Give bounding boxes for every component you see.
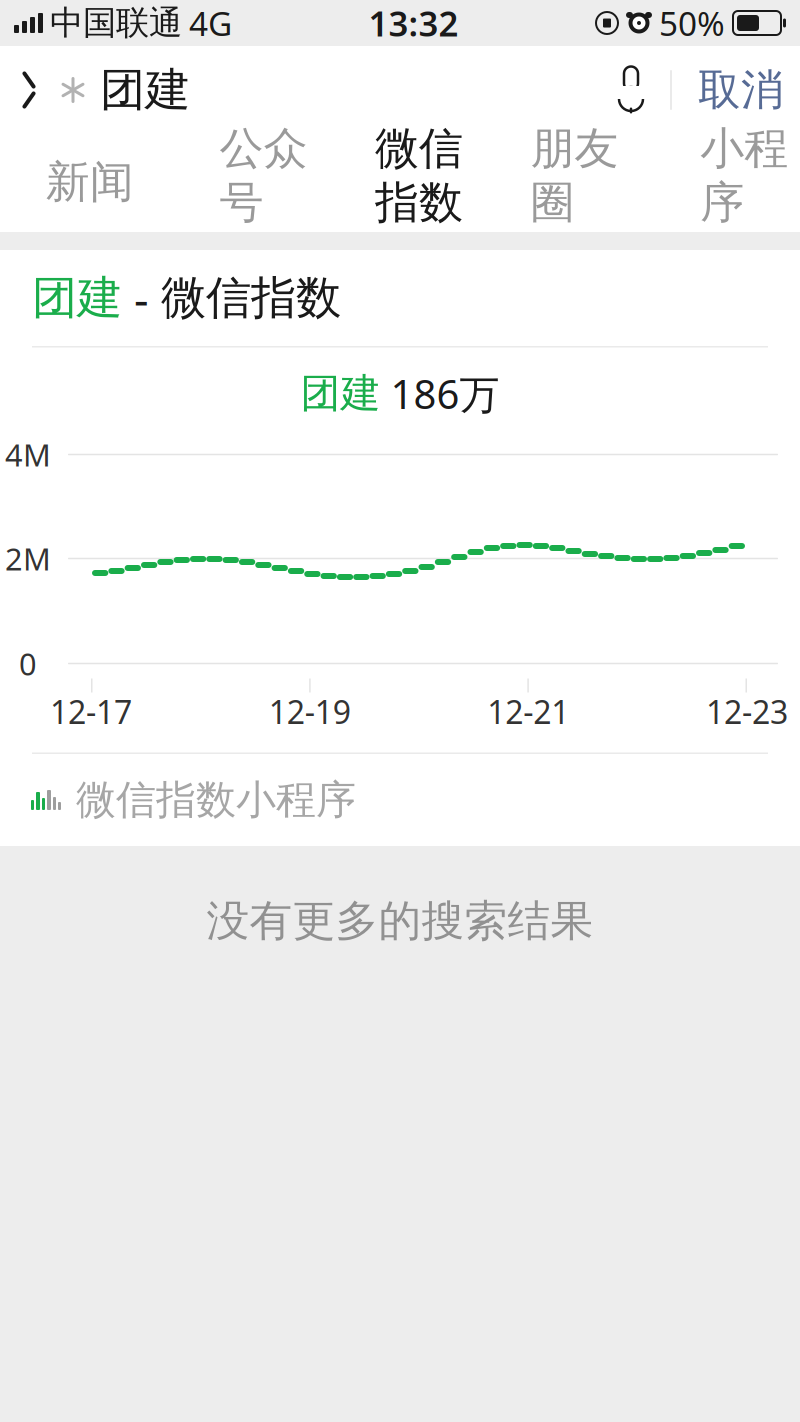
staticText: 朋友圈 xyxy=(531,121,619,230)
staticText: - xyxy=(122,268,161,328)
staticText: 50% xyxy=(659,1,725,45)
staticText: 186万 xyxy=(390,367,499,420)
button[interactable]: 新闻 xyxy=(34,134,146,232)
staticText: 没有更多的搜索结果 xyxy=(206,895,593,947)
staticText: 13:32 xyxy=(368,0,458,46)
staticText: 取消 xyxy=(698,64,784,116)
staticText: 团建 xyxy=(100,62,190,118)
staticText: 微信指数 xyxy=(375,121,463,230)
button[interactable]: 小程序 xyxy=(688,134,800,232)
staticText: 12-23 xyxy=(706,690,788,733)
staticText: 新闻 xyxy=(46,155,134,209)
staticText: 微信指数 xyxy=(161,270,341,326)
staticText: 0 xyxy=(19,643,37,684)
staticText: 微信指数小程序 xyxy=(76,775,356,824)
staticText: 12-21 xyxy=(487,690,569,733)
staticText: 4G xyxy=(189,1,232,45)
button[interactable]: 返回 xyxy=(0,46,58,134)
staticText: 4M xyxy=(5,434,51,475)
staticText: 团建 xyxy=(300,369,380,418)
staticText: 12-17 xyxy=(50,690,132,733)
button[interactable]: 取消 xyxy=(682,46,800,134)
staticText: 小程序 xyxy=(700,121,788,230)
staticText: 团建 xyxy=(32,270,122,326)
button[interactable]: 公众号 xyxy=(208,134,319,232)
staticText: 2M xyxy=(5,538,51,579)
staticText: 公众号 xyxy=(219,121,307,230)
staticText: 12-19 xyxy=(269,690,351,733)
staticText: 中国联通 xyxy=(50,2,182,43)
button[interactable]: 微信指数 xyxy=(363,134,475,232)
button[interactable]: 朋友圈 xyxy=(519,134,630,232)
button[interactable]: 微信指数小程序 xyxy=(0,754,800,846)
button[interactable]: 语音搜索 xyxy=(602,46,660,134)
